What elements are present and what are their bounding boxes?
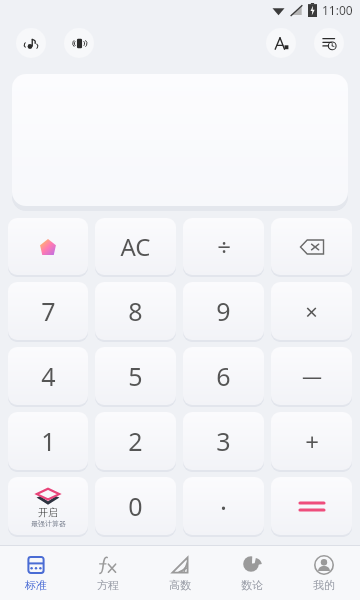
button[interactable]: —: [271, 347, 352, 405]
staticText: ·: [220, 489, 227, 524]
button[interactable]: +: [271, 412, 352, 470]
button[interactable]: 开启: [8, 477, 88, 535]
button[interactable]: ·: [183, 477, 264, 535]
staticText: 6: [216, 359, 231, 393]
button[interactable]: 6: [183, 347, 264, 405]
button[interactable]: 标准: [0, 546, 72, 600]
button[interactable]: 8: [95, 282, 176, 340]
button[interactable]: Sound off: [16, 28, 46, 58]
button[interactable]: 0: [95, 477, 176, 535]
staticText: 11:00: [322, 2, 353, 18]
staticText: 最强计算器: [31, 519, 66, 528]
staticText: 高数: [169, 578, 191, 592]
button[interactable]: ÷: [183, 218, 264, 275]
button[interactable]: Theme: [8, 218, 88, 275]
button[interactable]: 3: [183, 412, 264, 470]
staticText: 3: [216, 424, 231, 458]
button[interactable]: 数论: [216, 546, 288, 600]
staticText: 方程: [97, 578, 119, 592]
staticText: 1: [41, 424, 56, 458]
staticText: 4: [41, 359, 56, 393]
button[interactable]: 我的: [288, 546, 360, 600]
button[interactable]: History: [314, 28, 344, 58]
button[interactable]: 7: [8, 282, 88, 340]
button[interactable]: Vibrate: [64, 28, 94, 58]
button[interactable]: Backspace: [271, 218, 352, 275]
staticText: 开启: [38, 506, 58, 519]
staticText: 0: [128, 489, 143, 523]
staticText: 8: [128, 294, 143, 328]
button[interactable]: Font size: [266, 28, 296, 58]
button[interactable]: 方程: [72, 546, 144, 600]
button[interactable]: AC: [95, 218, 176, 275]
button[interactable]: 9: [183, 282, 264, 340]
staticText: 2: [128, 424, 143, 458]
button[interactable]: 1: [8, 412, 88, 470]
staticText: AC: [120, 230, 151, 263]
button[interactable]: 5: [95, 347, 176, 405]
staticText: 9: [216, 294, 231, 328]
staticText: 5: [128, 359, 143, 393]
button[interactable]: 4: [8, 347, 88, 405]
staticText: +: [305, 425, 319, 458]
staticText: ÷: [217, 230, 231, 263]
staticText: 数论: [241, 578, 263, 592]
staticText: —: [302, 363, 322, 390]
staticText: 标准: [25, 578, 47, 592]
staticText: 我的: [313, 578, 335, 592]
button[interactable]: 2: [95, 412, 176, 470]
button[interactable]: Equals: [271, 477, 352, 535]
staticText: 7: [41, 294, 56, 328]
staticText: ×: [305, 296, 318, 326]
button[interactable]: ×: [271, 282, 352, 340]
button[interactable]: 高数: [144, 546, 216, 600]
